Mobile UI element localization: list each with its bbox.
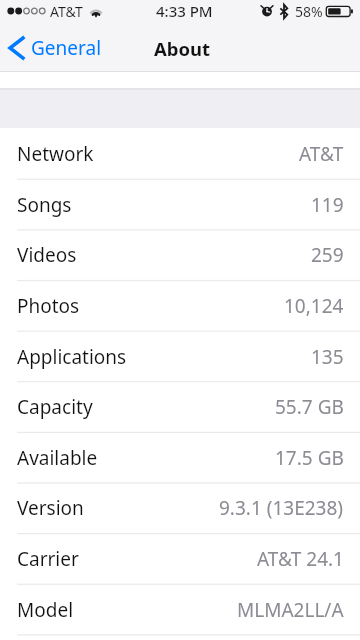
staticText: Available bbox=[17, 445, 98, 471]
staticText: 135 bbox=[311, 344, 344, 370]
staticText: Songs bbox=[17, 192, 72, 218]
staticText: Version bbox=[17, 495, 84, 521]
staticText: 10,124 bbox=[284, 293, 344, 319]
button[interactable]: Capacity bbox=[0, 381, 360, 433]
staticText: Photos bbox=[17, 293, 80, 319]
staticText: AT&T bbox=[50, 2, 83, 21]
button[interactable]: Videos bbox=[0, 229, 360, 281]
staticText: AT&T bbox=[299, 141, 344, 167]
staticText: About bbox=[154, 36, 211, 61]
button[interactable]: Back to General bbox=[0, 35, 110, 61]
staticText: 9.3.1 (13E238) bbox=[219, 495, 344, 521]
staticText: AT&T 24.1 bbox=[257, 546, 344, 572]
staticText: Model bbox=[17, 597, 74, 623]
button[interactable]: Network bbox=[0, 128, 360, 180]
staticText: 119 bbox=[311, 192, 344, 218]
button[interactable]: Photos bbox=[0, 280, 360, 332]
button[interactable]: Songs bbox=[0, 179, 360, 231]
button[interactable]: Applications bbox=[0, 331, 360, 383]
staticText: Applications bbox=[17, 344, 127, 370]
button[interactable]: Available bbox=[0, 432, 360, 484]
staticText: 259 bbox=[311, 242, 344, 268]
staticText: Videos bbox=[17, 242, 77, 268]
staticText: General bbox=[31, 35, 102, 61]
staticText: 55.7 GB bbox=[275, 394, 344, 420]
staticText: 58% bbox=[295, 2, 323, 21]
button[interactable]: Carrier bbox=[0, 533, 360, 585]
staticText: Carrier bbox=[17, 546, 79, 572]
staticText: Capacity bbox=[17, 394, 93, 420]
staticText: MLMA2LL/A bbox=[237, 597, 344, 623]
staticText: Network bbox=[17, 141, 94, 167]
staticText: 17.5 GB bbox=[275, 445, 344, 471]
staticText: 4:33 PM bbox=[156, 1, 213, 21]
button[interactable]: Version bbox=[0, 482, 360, 534]
button[interactable]: Model bbox=[0, 584, 360, 636]
